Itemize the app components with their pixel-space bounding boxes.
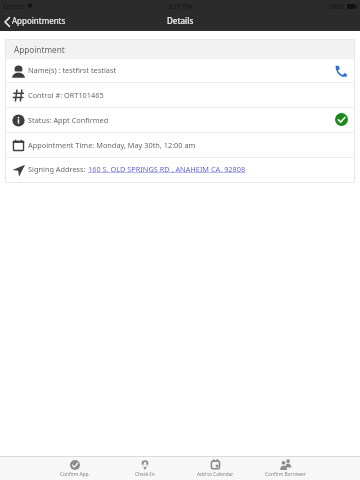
button[interactable]: Appointment Time: Monday, May 30th, 12:0… — [6, 133, 354, 158]
staticText: Confirm App. — [60, 471, 90, 478]
staticText: Signing Address: — [28, 164, 88, 174]
button[interactable]: Signing Address: — [6, 158, 354, 182]
staticText: Control #: ORT101465 — [28, 90, 104, 100]
button[interactable]: Name(s) : testfirst testlast — [6, 59, 354, 83]
button[interactable]: Confirm Borrower — [250, 457, 320, 480]
staticText: 100% — [328, 2, 345, 11]
staticText: 3:27 PM — [168, 2, 193, 11]
button[interactable]: Appointments — [3, 12, 360, 31]
button[interactable]: Control #: ORT101465 — [6, 83, 354, 108]
staticText: Add to Calendar — [197, 471, 234, 478]
button[interactable]: Add to Calendar — [180, 457, 250, 480]
button[interactable]: Confirm App. — [40, 457, 110, 480]
staticText: Appointment — [14, 44, 65, 55]
staticText: Carrier — [3, 2, 25, 11]
other: Confirmed — [335, 113, 348, 126]
staticText: Check-In — [135, 471, 155, 478]
button[interactable]: Status: Appt Confirmed — [6, 108, 354, 133]
staticText: Appointment Time: Monday, May 30th, 12:0… — [28, 140, 196, 150]
staticText: Appointments — [12, 15, 66, 26]
staticText: Confirm Borrower — [265, 471, 306, 478]
button[interactable]: Check-In — [110, 457, 180, 480]
staticText: Details — [167, 15, 194, 26]
staticText: Name(s) : testfirst testlast — [28, 65, 117, 75]
staticText: 160 S. OLD SPRINGS RD , ANAHEIM CA. 9280… — [88, 164, 246, 174]
staticText: Status: Appt Confirmed — [28, 115, 109, 125]
button[interactable]: Call — [334, 64, 348, 78]
